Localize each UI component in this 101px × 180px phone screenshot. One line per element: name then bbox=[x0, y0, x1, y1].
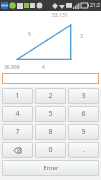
button[interactable]: 8 bbox=[35, 124, 66, 140]
button[interactable]: Enter bbox=[2, 160, 99, 176]
staticText: 4 bbox=[42, 64, 45, 71]
staticText: 3 bbox=[80, 33, 83, 40]
staticText: 2 bbox=[48, 91, 53, 101]
staticText: 53.131 bbox=[52, 12, 68, 19]
staticText: 36.869 bbox=[4, 64, 20, 71]
staticText: 0 bbox=[48, 145, 53, 155]
staticText: 5 bbox=[48, 109, 53, 119]
staticText: 4 bbox=[15, 109, 20, 119]
button[interactable]: 9 bbox=[68, 124, 99, 140]
button[interactable]: 1 bbox=[2, 88, 33, 104]
button[interactable]: Backspace bbox=[2, 142, 33, 158]
button[interactable]: 6 bbox=[68, 106, 99, 122]
staticText: Enter bbox=[43, 164, 59, 172]
staticText: 3 bbox=[81, 91, 86, 101]
staticText: 8 bbox=[48, 127, 53, 137]
staticText: . bbox=[83, 145, 85, 155]
button[interactable] bbox=[2, 73, 99, 84]
button[interactable]: 0 bbox=[35, 142, 66, 158]
staticText: 5 bbox=[28, 31, 31, 38]
button[interactable]: 5 bbox=[35, 106, 66, 122]
staticText: 1 bbox=[15, 91, 20, 101]
staticText: 21:2 bbox=[90, 2, 100, 9]
button[interactable]: . bbox=[68, 142, 99, 158]
staticText: 6 bbox=[81, 109, 86, 119]
staticText: 7 bbox=[15, 127, 20, 137]
staticText: 9 bbox=[81, 127, 86, 137]
button[interactable]: 2 bbox=[35, 88, 66, 104]
button[interactable]: 3 bbox=[68, 88, 99, 104]
button[interactable]: 4 bbox=[2, 106, 33, 122]
button[interactable]: 7 bbox=[2, 124, 33, 140]
